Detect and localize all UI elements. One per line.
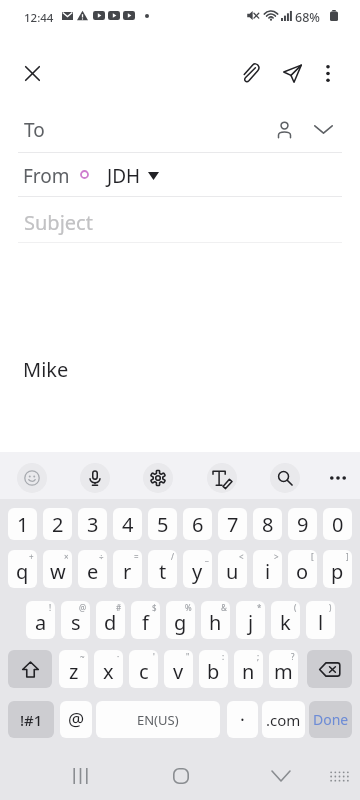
staticText: EN(US) [137, 711, 179, 729]
button[interactable]: n [234, 650, 263, 688]
staticText: ) [329, 602, 332, 613]
button[interactable] [0, 152, 360, 196]
staticText: _ [205, 551, 209, 562]
staticText: s [71, 609, 81, 636]
button[interactable]: u [218, 550, 247, 588]
button[interactable]: Expand recipients [306, 112, 340, 146]
button[interactable]: Close [10, 51, 54, 95]
button[interactable]: e [78, 550, 107, 588]
button[interactable]: Send [270, 51, 314, 95]
staticText: ! [49, 602, 52, 613]
staticText: p [331, 558, 344, 585]
button[interactable]: o [288, 550, 317, 588]
button[interactable]: Back [257, 752, 305, 800]
staticText: < [239, 551, 244, 562]
button[interactable]: 5 [148, 508, 177, 540]
staticText: 4 [122, 511, 134, 538]
staticText: l [318, 609, 324, 636]
button[interactable]: 2 [43, 508, 72, 540]
button[interactable]: Backspace [307, 650, 352, 688]
button[interactable]: Keyboard settings [143, 463, 173, 493]
button[interactable]: Attach file [228, 49, 272, 93]
staticText: q [16, 558, 29, 585]
button[interactable]: Voice input [80, 463, 110, 493]
staticText: @ [68, 707, 85, 732]
staticText: Subject [24, 209, 93, 236]
button[interactable]: 6 [183, 508, 212, 540]
button[interactable]: Search [270, 463, 300, 493]
button[interactable]: Done [309, 701, 352, 738]
staticText: ( [294, 602, 297, 613]
staticText: : [222, 651, 225, 662]
staticText: v [173, 658, 184, 685]
button[interactable]: f [131, 601, 160, 639]
staticText: > [274, 551, 279, 562]
staticText: 6 [192, 511, 204, 538]
button[interactable]: y [183, 550, 212, 588]
button[interactable]: 0 [323, 508, 352, 540]
button[interactable]: 7 [218, 508, 247, 540]
button[interactable]: p [323, 550, 352, 588]
staticText: ; [257, 651, 260, 662]
staticText: !#1 [20, 710, 43, 730]
staticText: # [116, 602, 122, 613]
staticText: · [117, 651, 120, 662]
staticText: d [104, 609, 117, 636]
button[interactable]: More options [306, 51, 350, 95]
button[interactable]: b [199, 650, 228, 688]
staticText: JDH [107, 163, 141, 189]
button[interactable]: 9 [288, 508, 317, 540]
button[interactable]: j [236, 601, 265, 639]
button[interactable]: Emoji [17, 463, 47, 493]
button[interactable]: v [164, 650, 193, 688]
button[interactable]: Subject [0, 196, 360, 242]
button[interactable]: Text editing [207, 463, 237, 493]
staticText: 8 [262, 511, 274, 538]
button[interactable]: Space [96, 701, 220, 738]
button[interactable]: r [113, 550, 142, 588]
button[interactable]: w [43, 550, 72, 588]
staticText: x [103, 658, 114, 685]
button[interactable]: k [271, 601, 300, 639]
button[interactable]: Symbols [8, 701, 54, 738]
button[interactable]: g [166, 601, 195, 639]
button[interactable]: 8 [253, 508, 282, 540]
button[interactable]: Shift [8, 650, 52, 688]
button[interactable]: d [96, 601, 125, 639]
button[interactable]: m [269, 650, 298, 688]
button[interactable]: l [306, 601, 335, 639]
button[interactable]: 1 [8, 508, 37, 540]
button[interactable]: z [59, 650, 88, 688]
button[interactable]: Choose contact [267, 112, 301, 146]
staticText: e [87, 558, 99, 585]
button[interactable]: 3 [78, 508, 107, 540]
button[interactable]: t [148, 550, 177, 588]
button[interactable]: Dot com [262, 701, 305, 738]
staticText: m [274, 658, 293, 685]
button[interactable]: More keyboard options [322, 462, 354, 494]
staticText: ] [346, 551, 349, 562]
staticText: t [159, 558, 167, 585]
staticText: 0 [332, 511, 344, 538]
button[interactable]: To [0, 105, 360, 152]
staticText: y [192, 558, 203, 585]
staticText: ' [153, 651, 155, 662]
button[interactable]: 4 [113, 508, 142, 540]
button[interactable]: s [61, 601, 90, 639]
button[interactable]: c [129, 650, 158, 688]
button[interactable]: At sign [60, 701, 92, 738]
button[interactable]: h [201, 601, 230, 639]
staticText: w [50, 558, 66, 585]
staticText: f [142, 609, 149, 636]
button[interactable]: i [253, 550, 282, 588]
button[interactable]: Home [157, 752, 205, 800]
button[interactable]: Period [227, 701, 258, 738]
staticText: g [174, 609, 187, 636]
button[interactable]: Recent apps [56, 752, 104, 800]
button[interactable]: Hide keyboard [315, 752, 360, 800]
button[interactable]: x [94, 650, 123, 688]
staticText: 68% [295, 9, 320, 26]
button[interactable]: q [8, 550, 37, 588]
staticText: u [226, 558, 239, 585]
button[interactable]: a [26, 601, 55, 639]
